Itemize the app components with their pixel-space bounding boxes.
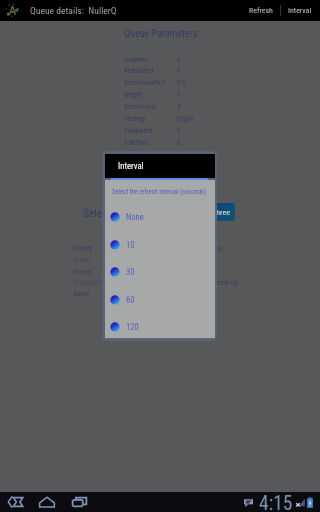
staticText: Weight — [124, 91, 142, 99]
staticText: internal-sip — [209, 279, 238, 287]
staticText: ServiceLevel — [124, 103, 157, 111]
staticText: Queue — [73, 290, 90, 298]
button[interactable]: Refresh — [242, 0, 280, 21]
staticText: 60 — [126, 295, 135, 305]
staticText: Paused — [73, 268, 93, 276]
button[interactable]: 30 — [105, 260, 215, 284]
staticText: Interval — [288, 6, 312, 15]
staticText: 0 — [177, 67, 181, 75]
staticText: Holdtime — [124, 56, 148, 64]
staticText: Select — [83, 206, 112, 219]
button[interactable]: 120 — [105, 315, 215, 339]
staticText: 10 — [126, 240, 135, 250]
staticText: Status — [73, 256, 90, 264]
button[interactable]: None — [105, 205, 215, 229]
staticText: Completed — [124, 127, 152, 135]
staticText: ringall — [177, 115, 193, 123]
staticText: Penalty — [73, 245, 92, 253]
staticText: Interval — [118, 161, 144, 171]
staticText: 5 — [177, 91, 181, 99]
staticText: Abandoned — [124, 67, 154, 75]
staticText: Queue Parameters — [124, 28, 198, 40]
staticText: Select the refresh interval (seconds) — [112, 188, 207, 196]
staticText: 30 — [126, 267, 135, 277]
staticText: StateInterface — [73, 279, 110, 287]
button[interactable]: Interval — [281, 0, 319, 21]
staticText: Three — [212, 208, 230, 217]
staticText: Strategy — [124, 115, 146, 123]
button[interactable]: Back — [5, 492, 27, 512]
staticText: three — [209, 245, 223, 253]
button[interactable]: Recent apps — [68, 492, 90, 512]
button[interactable]: Home — [36, 492, 58, 512]
staticText: 4:15 — [259, 492, 293, 512]
button[interactable]: Three — [207, 203, 235, 221]
staticText: 4 — [177, 103, 181, 111]
staticText: ServicelevelPerf — [124, 79, 166, 87]
staticText: 0 — [177, 127, 181, 135]
staticText: 0 — [177, 139, 181, 147]
button[interactable]: 10 — [105, 233, 215, 257]
button[interactable]: 60 — [105, 288, 215, 312]
staticText: None — [126, 212, 144, 222]
staticText: 120 — [126, 322, 139, 332]
staticText: TalkTime — [124, 139, 148, 147]
staticText: Refresh — [249, 6, 273, 15]
staticText: 0 — [177, 56, 181, 64]
staticText: Queue details: NullerQ — [30, 5, 117, 16]
staticText: 0.0 — [177, 79, 186, 87]
